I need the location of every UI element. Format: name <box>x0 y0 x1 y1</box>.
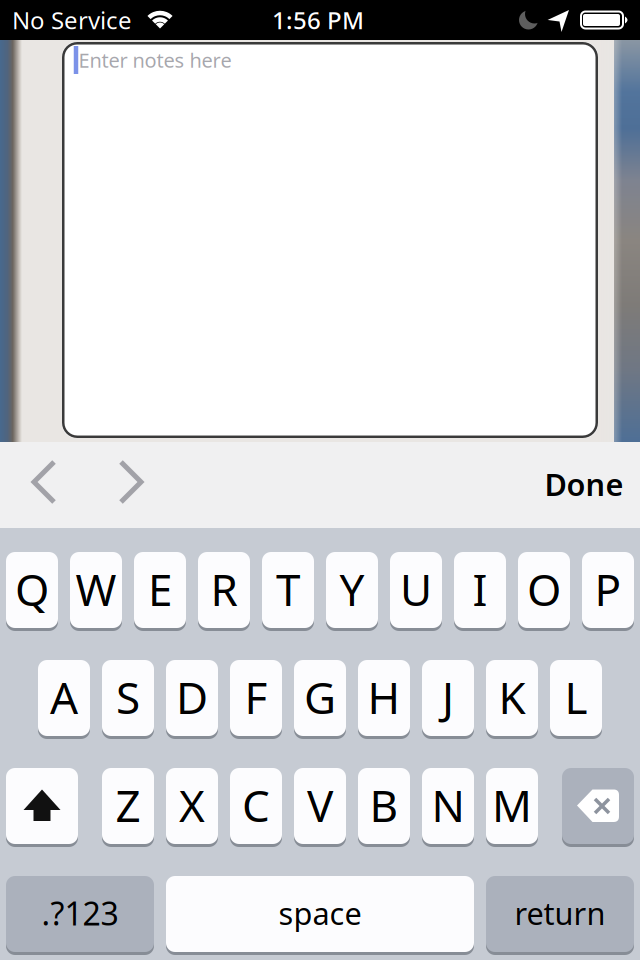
staticText: H <box>367 668 400 726</box>
button[interactable]: Shift <box>6 768 78 844</box>
staticText: K <box>498 668 525 726</box>
staticText: F <box>244 668 267 726</box>
staticText: 1:56 PM <box>272 4 364 36</box>
staticText: E <box>148 560 172 618</box>
button[interactable]: O <box>518 552 570 628</box>
button[interactable]: U <box>390 552 442 628</box>
button[interactable]: V <box>294 768 346 844</box>
button[interactable]: N <box>422 768 474 844</box>
staticText: S <box>116 668 140 726</box>
button[interactable]: return <box>486 876 634 952</box>
button[interactable]: P <box>582 552 634 628</box>
staticText: Q <box>15 560 49 618</box>
staticText: P <box>594 560 621 618</box>
staticText: G <box>304 668 336 726</box>
button[interactable]: T <box>262 552 314 628</box>
button[interactable]: .?123 <box>6 876 154 952</box>
staticText: I <box>472 560 487 618</box>
staticText: R <box>210 560 237 618</box>
button[interactable]: G <box>294 660 346 736</box>
button[interactable]: H <box>358 660 410 736</box>
staticText: V <box>307 776 333 834</box>
button[interactable]: F <box>230 660 282 736</box>
button[interactable]: Next <box>109 452 153 512</box>
button[interactable]: E <box>134 552 186 628</box>
staticText: A <box>50 668 78 726</box>
button[interactable]: W <box>70 552 122 628</box>
staticText: W <box>75 560 116 618</box>
staticText: N <box>431 776 464 834</box>
staticText: M <box>492 776 532 834</box>
staticText: .?123 <box>41 892 118 934</box>
button[interactable]: M <box>486 768 538 844</box>
button[interactable]: Y <box>326 552 378 628</box>
button[interactable]: R <box>198 552 250 628</box>
staticText: Enter notes here <box>78 47 231 73</box>
button[interactable]: L <box>550 660 602 736</box>
button[interactable]: Done <box>544 464 623 504</box>
button[interactable]: B <box>358 768 410 844</box>
staticText: J <box>442 668 454 726</box>
button[interactable]: C <box>230 768 282 844</box>
button[interactable]: D <box>166 660 218 736</box>
button[interactable]: J <box>422 660 474 736</box>
button[interactable]: X <box>166 768 218 844</box>
staticText: Y <box>339 560 364 618</box>
staticText: Done <box>544 464 623 504</box>
staticText: D <box>176 668 208 726</box>
button[interactable]: S <box>102 660 154 736</box>
button[interactable]: K <box>486 660 538 736</box>
button[interactable]: Delete <box>562 768 634 844</box>
button[interactable]: Q <box>6 552 58 628</box>
staticText: B <box>369 776 398 834</box>
button[interactable]: Z <box>102 768 154 844</box>
staticText: No Service <box>12 4 132 36</box>
staticText: L <box>564 668 587 726</box>
staticText: space <box>278 893 361 933</box>
staticText: Z <box>115 776 140 834</box>
staticText: U <box>400 560 432 618</box>
button[interactable]: Previous <box>22 452 66 512</box>
button[interactable]: I <box>454 552 506 628</box>
button[interactable]: Enter notes here <box>62 42 598 438</box>
staticText: T <box>276 560 300 618</box>
staticText: C <box>242 776 270 834</box>
staticText: return <box>514 893 605 933</box>
staticText: O <box>527 560 561 618</box>
staticText: X <box>179 776 205 834</box>
button[interactable]: space <box>166 876 474 952</box>
button[interactable]: A <box>38 660 90 736</box>
